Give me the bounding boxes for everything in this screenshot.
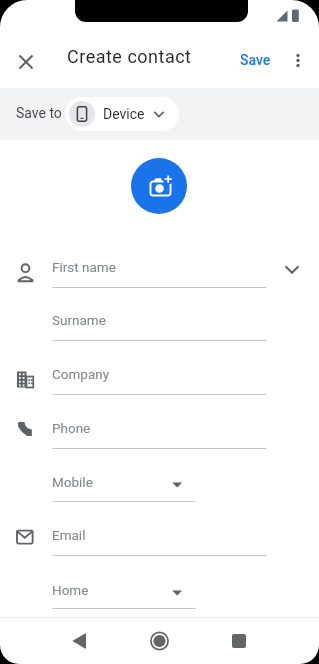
staticText: Home [52, 582, 89, 598]
staticText: Device [103, 106, 145, 122]
button[interactable] [288, 50, 308, 70]
button[interactable] [13, 49, 39, 75]
button[interactable] [281, 259, 303, 281]
staticText: First name [52, 259, 116, 275]
staticText: Phone [52, 420, 91, 436]
staticText: Email [52, 527, 86, 543]
staticText: Mobile [52, 474, 93, 490]
button[interactable] [131, 158, 187, 214]
staticText: Surname [52, 312, 106, 328]
button[interactable]: Mobile [52, 469, 196, 503]
staticText: Save [240, 52, 271, 68]
staticText: Create contact [67, 46, 192, 67]
button[interactable] [221, 620, 257, 656]
staticText: Save to [16, 105, 62, 121]
button[interactable]: Home [52, 577, 196, 610]
button[interactable] [58, 620, 94, 656]
button[interactable] [141, 620, 177, 656]
staticText: Company [52, 366, 110, 382]
button[interactable]: Device [65, 97, 179, 131]
button[interactable]: Save [232, 46, 279, 74]
